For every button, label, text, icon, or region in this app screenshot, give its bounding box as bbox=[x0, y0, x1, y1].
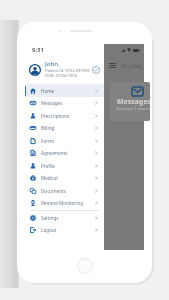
button[interactable]: Prescriptions bbox=[25, 110, 104, 122]
staticText: Logout bbox=[41, 227, 95, 233]
staticText: Hi, John bbox=[121, 62, 142, 69]
button[interactable]: Logout bbox=[25, 224, 104, 236]
button[interactable]: Messages bbox=[110, 82, 150, 121]
button[interactable]: Open navigation menu bbox=[109, 63, 116, 68]
other: Verified bbox=[92, 66, 100, 74]
staticText: Settings bbox=[41, 215, 95, 221]
button[interactable]: Settings bbox=[25, 212, 104, 224]
button[interactable]: Forms bbox=[25, 135, 104, 147]
staticText: You have 1 new m bbox=[116, 106, 150, 111]
button[interactable]: Agreements bbox=[25, 147, 104, 159]
staticText: Messages bbox=[41, 100, 95, 106]
other: Messages bbox=[132, 87, 143, 96]
staticText: 9:31 bbox=[32, 46, 44, 54]
staticText: Remote Monitoring bbox=[41, 200, 95, 206]
staticText: Forms bbox=[41, 138, 95, 144]
staticText: Prescriptions bbox=[41, 113, 95, 119]
button[interactable]: Medical bbox=[25, 172, 104, 184]
staticText: Medical bbox=[41, 175, 95, 181]
button[interactable]: Home button bbox=[77, 258, 93, 274]
staticText: John. bbox=[45, 60, 60, 68]
button[interactable]: Profile bbox=[25, 160, 104, 172]
button[interactable]: Remote Monitoring bbox=[25, 197, 104, 209]
button[interactable]: Billing bbox=[25, 122, 104, 134]
staticText: DOB: 07/24/1976 bbox=[45, 73, 78, 78]
staticText: Agreements bbox=[41, 150, 95, 156]
staticText: Documents bbox=[41, 188, 95, 194]
button[interactable]: Home bbox=[25, 85, 104, 97]
button[interactable]: John. bbox=[25, 56, 104, 84]
staticText: Billing bbox=[41, 125, 95, 131]
staticText: Home bbox=[41, 88, 95, 94]
button[interactable]: Documents bbox=[25, 185, 104, 197]
staticText: Profile bbox=[41, 163, 95, 169]
staticText: Messages bbox=[117, 97, 150, 107]
button[interactable]: Messages bbox=[25, 97, 104, 109]
staticText: Patient Id: 9753-997999 bbox=[45, 68, 90, 73]
